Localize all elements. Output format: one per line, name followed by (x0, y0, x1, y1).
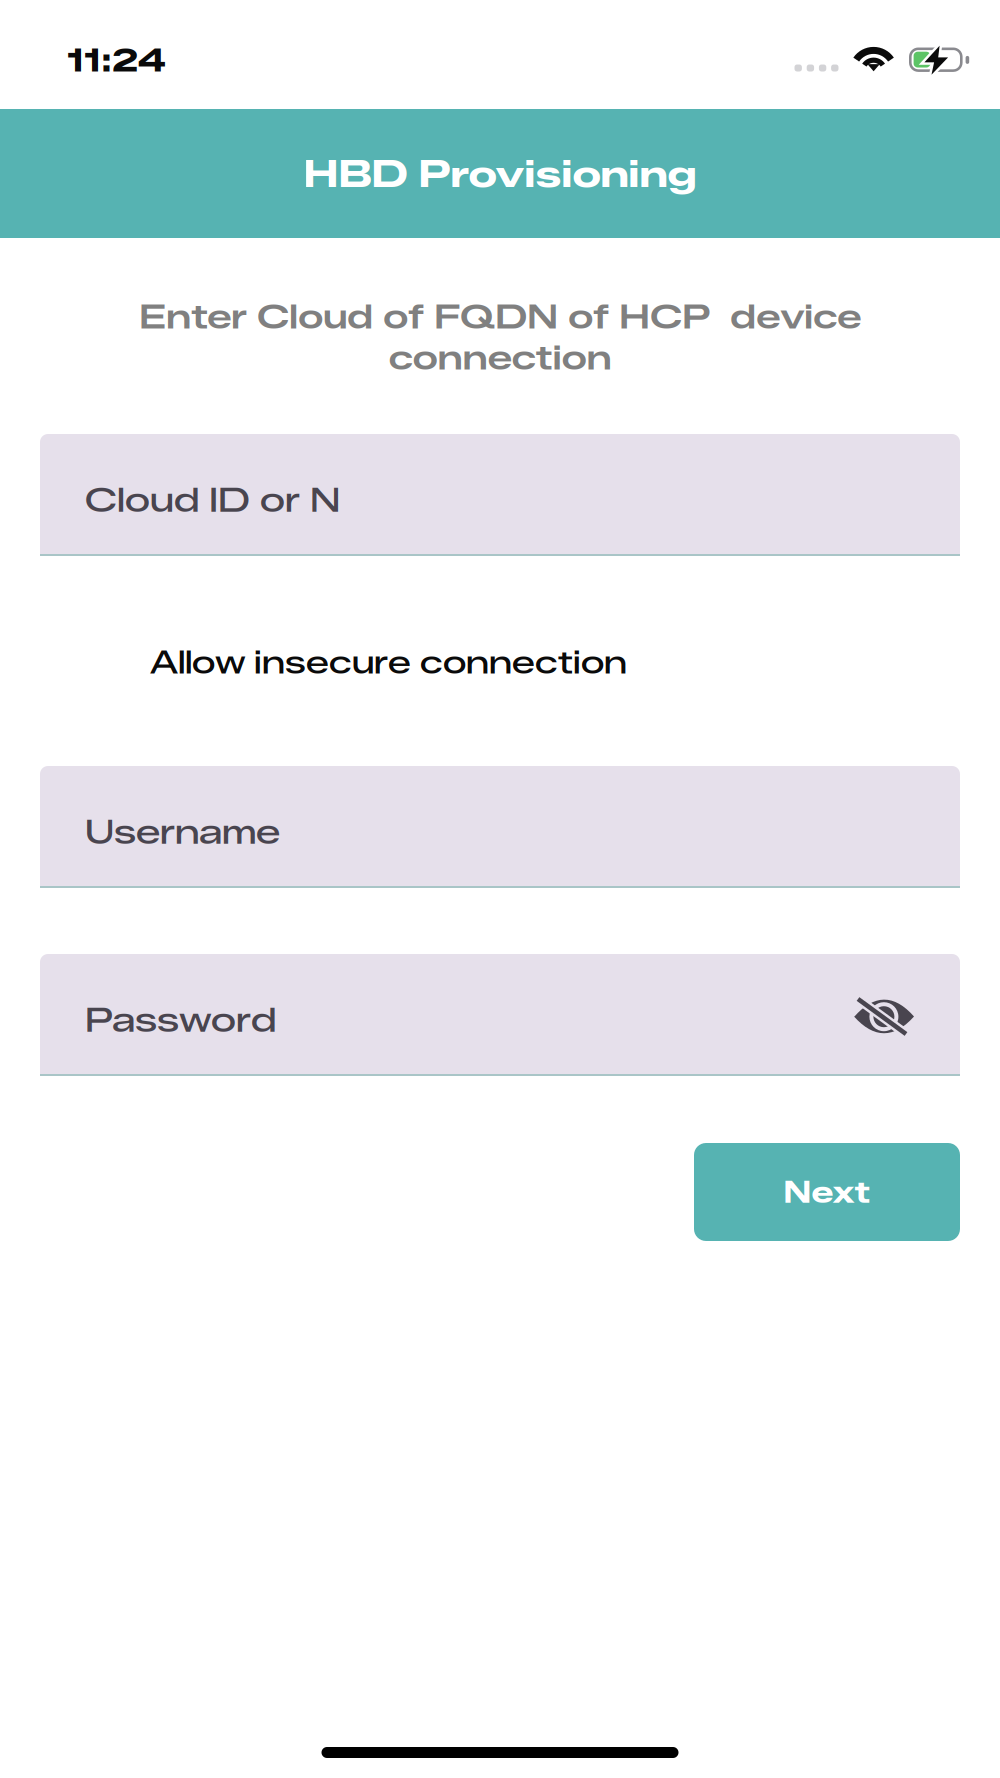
staticText: Password (85, 999, 276, 1040)
staticText: 11:24 (67, 41, 166, 79)
button[interactable]: Password (40, 954, 960, 1076)
button[interactable]: Show password (854, 997, 914, 1037)
button[interactable]: Cloud ID or N (40, 434, 960, 556)
staticText: Next (783, 1174, 870, 1210)
staticText: Username (85, 811, 280, 852)
button[interactable]: Next (694, 1143, 960, 1241)
staticText: Allow insecure connection (150, 643, 627, 681)
staticText: HBD Provisioning (303, 150, 696, 196)
staticText: Enter Cloud of FQDN of HCP device connec… (139, 296, 861, 378)
staticText: Cloud ID or N (85, 479, 340, 520)
button[interactable]: Username (40, 766, 960, 888)
